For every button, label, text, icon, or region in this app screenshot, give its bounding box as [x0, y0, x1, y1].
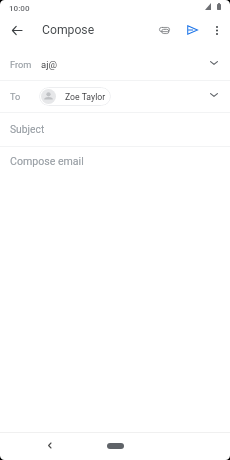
button[interactable]: Compose email: [0, 147, 230, 427]
staticText: aj@: [41, 59, 57, 70]
button[interactable]: Subject: [0, 112, 230, 146]
button[interactable]: From: [0, 48, 230, 80]
staticText: Subject: [10, 123, 45, 135]
staticText: Compose email: [10, 155, 84, 167]
other: Expand: [206, 88, 222, 104]
button[interactable]: Attach file: [152, 18, 176, 42]
staticText: Compose: [42, 23, 95, 37]
staticText: Zoe Taylor: [65, 92, 106, 102]
staticText: From: [10, 59, 32, 70]
button[interactable]: Back: [4, 17, 30, 43]
other: Expand: [206, 56, 222, 72]
staticText: To: [10, 91, 21, 102]
button[interactable]: Send: [180, 18, 204, 42]
button[interactable]: Home: [107, 443, 124, 449]
button[interactable]: To: [0, 80, 230, 112]
button[interactable]: Back: [39, 435, 59, 455]
staticText: 10:00: [9, 3, 30, 12]
button[interactable]: More options: [205, 18, 229, 42]
